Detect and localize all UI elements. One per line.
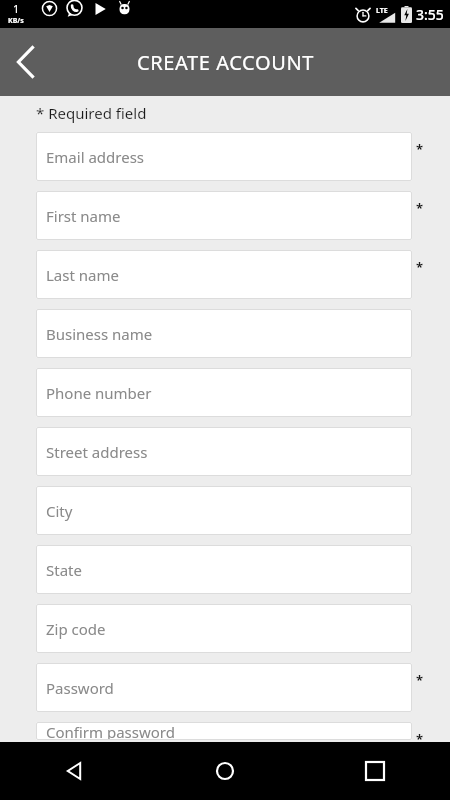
button[interactable]: Confirm password [36,722,412,740]
staticText: * [416,140,424,158]
button[interactable]: Home [150,742,300,800]
staticText: 3:55 [416,5,444,24]
staticText: LTE [376,6,388,16]
button[interactable]: Recent apps [300,742,450,800]
button[interactable]: Password [36,663,412,712]
staticText: * Required field [36,103,147,123]
button[interactable]: First name [36,191,412,240]
staticText: Confirm password [46,722,175,740]
button[interactable]: Back [0,36,52,88]
staticText: Last name [46,265,119,285]
staticText: * [416,730,424,740]
staticText: Business name [46,324,153,344]
button[interactable]: State [36,545,412,594]
button[interactable]: Street address [36,427,412,476]
staticText: State [46,560,82,580]
button[interactable]: Business name [36,309,412,358]
button[interactable]: Phone number [36,368,412,417]
staticText: * [416,671,424,689]
staticText: Phone number [46,383,152,403]
staticText: City [46,501,73,521]
staticText: * [416,258,424,276]
button[interactable]: Last name [36,250,412,299]
staticText: First name [46,206,121,226]
staticText: Password [46,678,114,698]
staticText: 1 [13,1,20,16]
staticText: CREATE ACCOUNT [137,49,314,76]
staticText: Zip code [46,619,106,639]
staticText: KB/s [8,16,24,26]
staticText: Email address [46,147,145,167]
button[interactable]: City [36,486,412,535]
button[interactable]: Back [0,742,150,800]
staticText: Street address [46,442,148,462]
button[interactable]: Zip code [36,604,412,653]
button[interactable]: Email address [36,132,412,181]
staticText: * [416,199,424,217]
